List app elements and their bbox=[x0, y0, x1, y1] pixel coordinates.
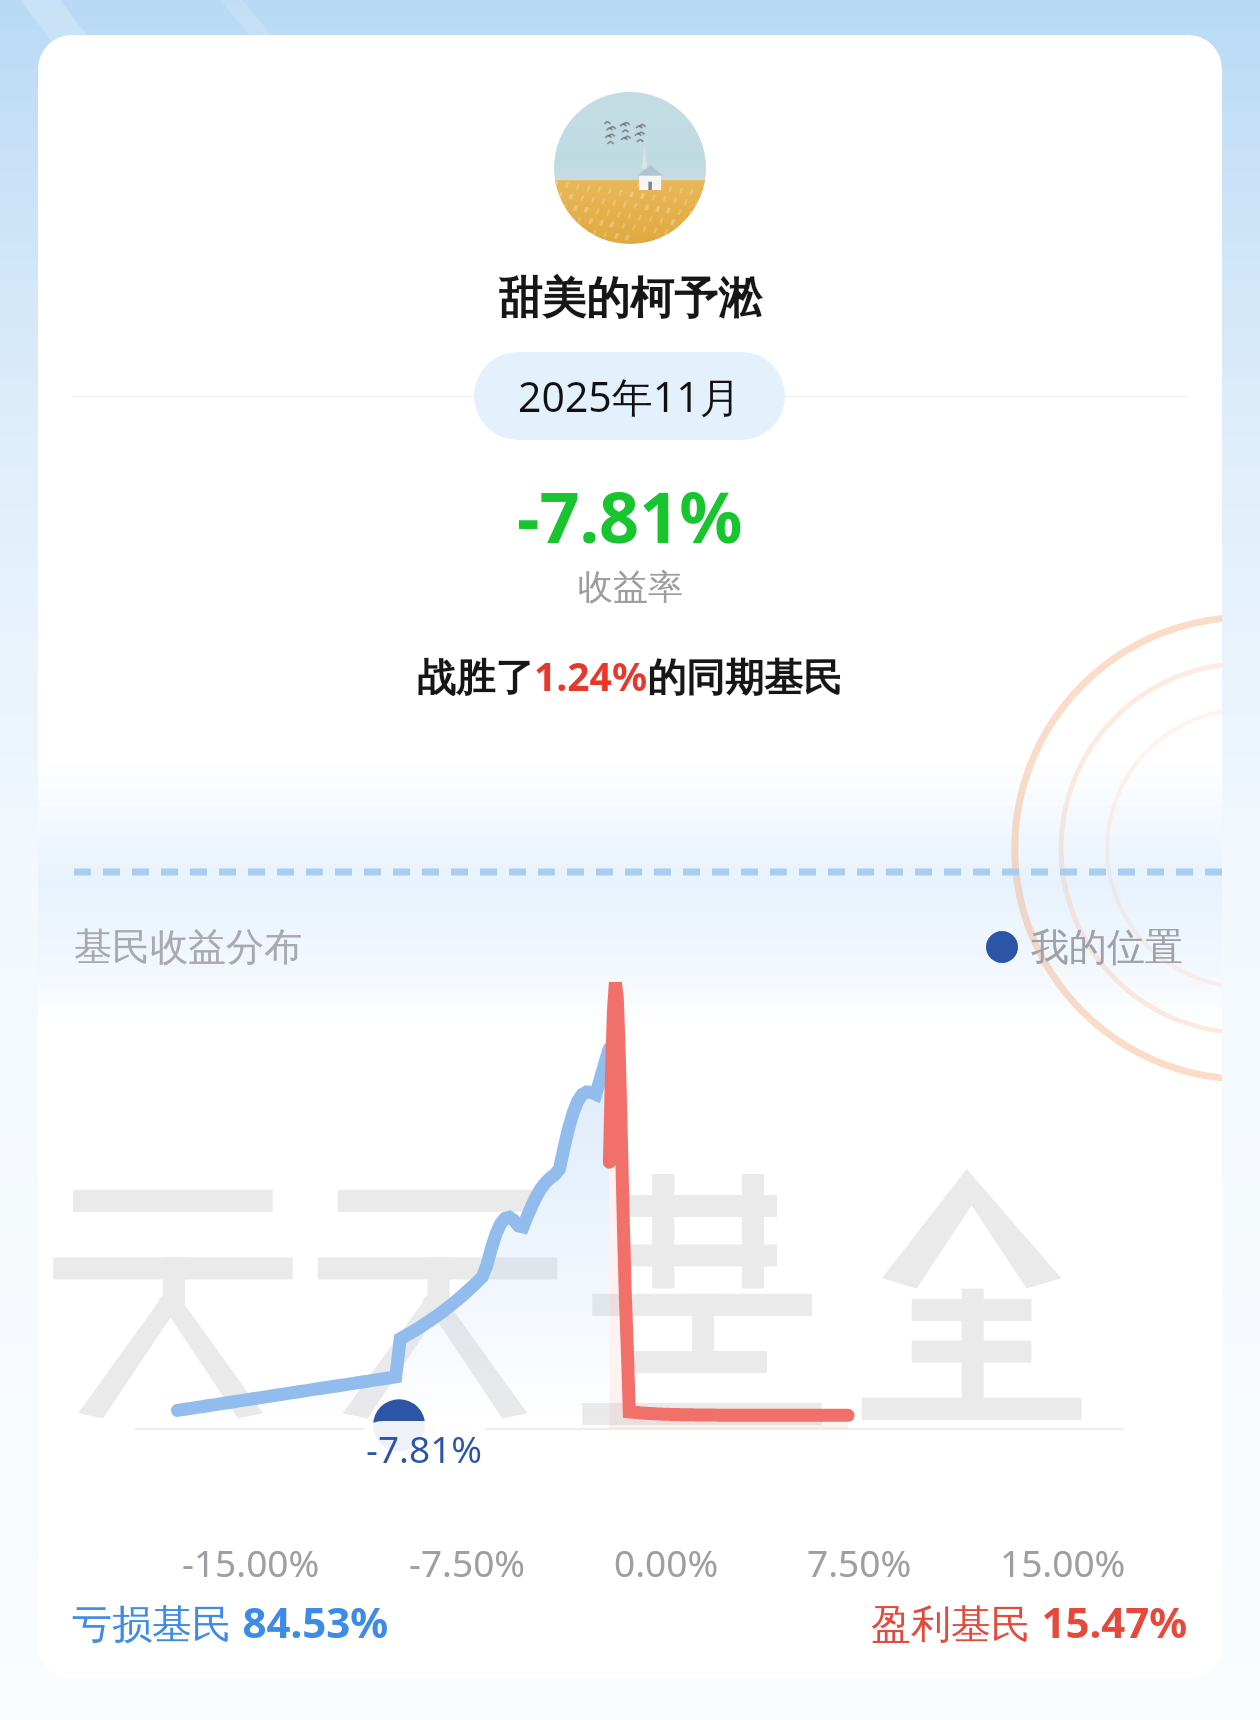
staticText: 甜美的柯予淞 bbox=[498, 271, 762, 326]
button[interactable]: 我的位置 bbox=[983, 920, 1186, 974]
staticText: -7.81% bbox=[517, 468, 743, 563]
staticText: 2025年11月 bbox=[518, 368, 741, 424]
button[interactable]: 2025年11月 bbox=[474, 352, 785, 440]
staticText: 亏损基民 84.53% bbox=[72, 1593, 389, 1650]
staticText: 0.00% bbox=[614, 1537, 719, 1587]
staticText: 15.00% bbox=[1000, 1537, 1126, 1587]
staticText: 我的位置 bbox=[1031, 923, 1183, 971]
staticText: 战胜了1.24%的同期基民 bbox=[417, 649, 843, 702]
staticText: -7.50% bbox=[409, 1537, 526, 1587]
staticText: 7.50% bbox=[807, 1537, 912, 1587]
staticText: 盈利基民 15.47% bbox=[871, 1593, 1188, 1650]
staticText: 基民收益分布 bbox=[74, 923, 302, 971]
button[interactable]: 用户头像 bbox=[554, 92, 706, 244]
staticText: -7.81% bbox=[366, 1423, 483, 1473]
staticText: -15.00% bbox=[182, 1537, 320, 1587]
staticText: 收益率 bbox=[578, 565, 683, 609]
